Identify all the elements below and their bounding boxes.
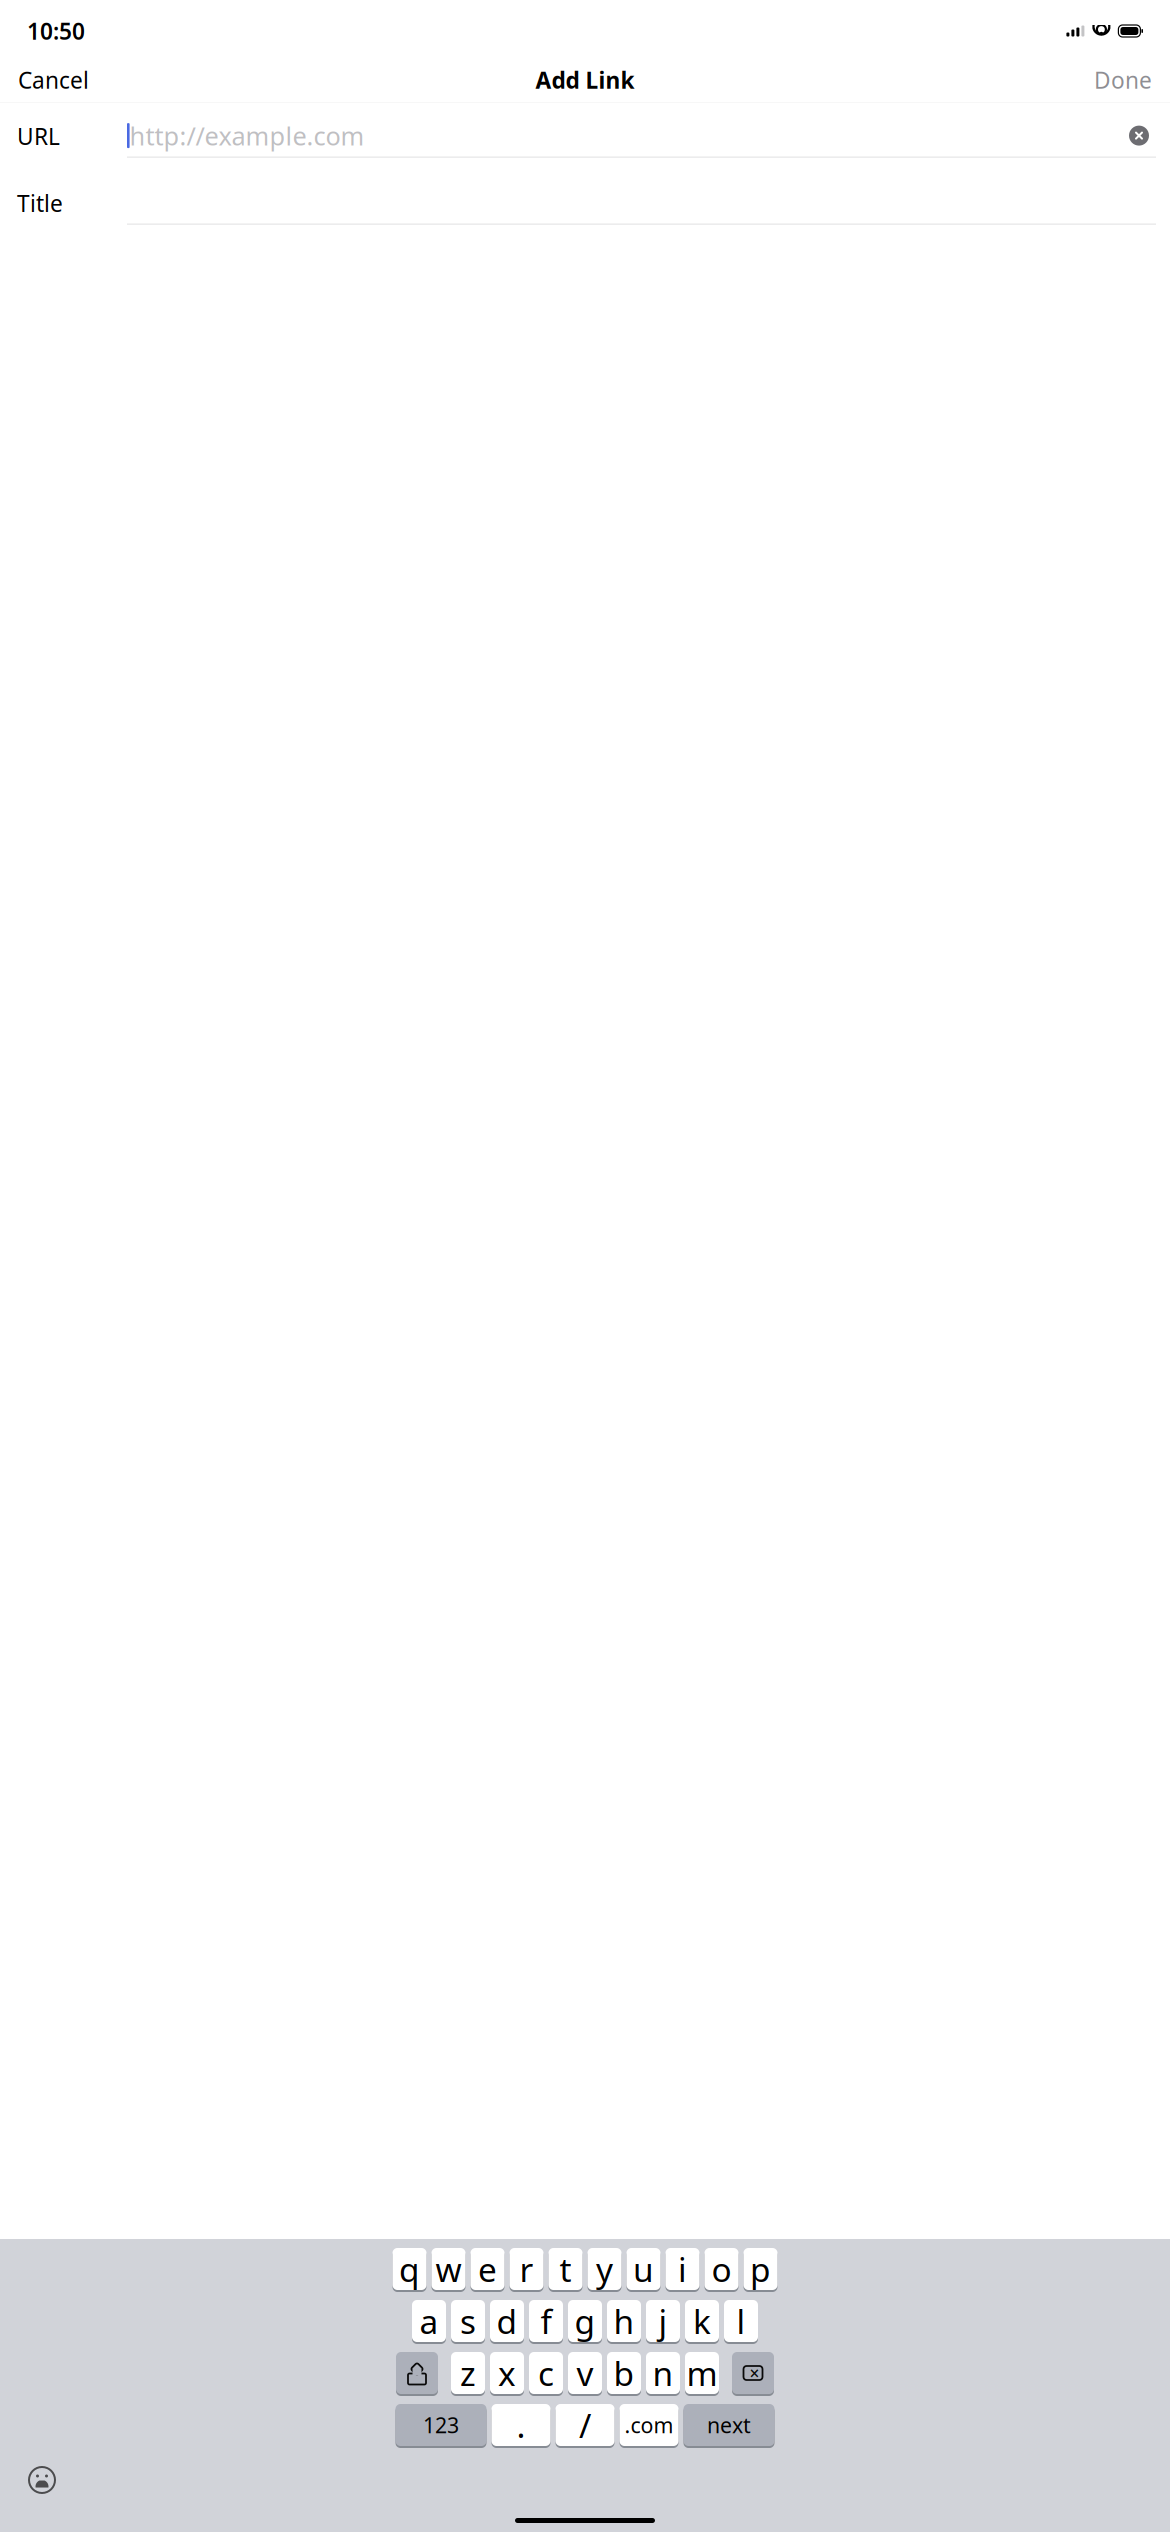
staticText: k (693, 2299, 711, 2343)
button[interactable]: h (607, 2300, 641, 2344)
staticText: s (460, 2299, 476, 2343)
button[interactable]: Done (1085, 57, 1161, 103)
staticText: y (596, 2247, 613, 2291)
staticText: b (613, 2351, 634, 2395)
button[interactable]: s (451, 2300, 485, 2344)
button[interactable]: v (568, 2352, 602, 2396)
staticText: t (559, 2247, 571, 2291)
staticText: d (496, 2299, 517, 2343)
button[interactable]: q (392, 2248, 426, 2292)
staticText: Done (1094, 65, 1152, 95)
staticText: q (399, 2247, 420, 2291)
staticText: v (576, 2351, 593, 2395)
staticText: Cancel (18, 65, 89, 95)
staticText: x (498, 2351, 516, 2395)
button[interactable]: r (509, 2248, 543, 2292)
staticText: 123 (423, 2411, 459, 2439)
button[interactable]: i (665, 2248, 699, 2292)
button[interactable]: t (548, 2248, 582, 2292)
button[interactable]: c (529, 2352, 563, 2396)
staticText: g (574, 2299, 595, 2343)
button[interactable]: j (646, 2300, 680, 2344)
button[interactable]: a (412, 2300, 446, 2344)
button[interactable]: b (607, 2352, 641, 2396)
button[interactable]: n (646, 2352, 680, 2396)
staticText: c (538, 2351, 554, 2395)
staticText: m (686, 2351, 717, 2395)
staticText: j (658, 2299, 667, 2343)
button[interactable]: f (529, 2300, 563, 2344)
staticText: i (678, 2247, 687, 2291)
button[interactable]: / (555, 2404, 614, 2448)
staticText: p (750, 2247, 771, 2291)
button[interactable]: Emoji (22, 2460, 62, 2500)
staticText: / (579, 2403, 591, 2447)
button[interactable]: u (626, 2248, 660, 2292)
staticText: .com (624, 2411, 673, 2439)
staticText: 10:50 (27, 16, 85, 46)
button[interactable]: .com (619, 2404, 678, 2448)
button[interactable]: m (685, 2352, 719, 2396)
staticText: Title (17, 188, 63, 218)
button[interactable]: l (724, 2300, 758, 2344)
staticText: r (519, 2247, 533, 2291)
button[interactable]: Clear text (1122, 119, 1156, 153)
staticText: × (749, 2361, 759, 2384)
button[interactable]: Delete (732, 2352, 774, 2396)
staticText: n (652, 2351, 673, 2395)
staticText: http://example.com (130, 119, 365, 152)
staticText: URL (17, 121, 60, 151)
staticText: e (478, 2247, 497, 2291)
staticText: f (540, 2299, 551, 2343)
staticText: . (516, 2403, 525, 2447)
staticText: l (736, 2299, 745, 2343)
button[interactable]: . (491, 2404, 550, 2448)
staticText: Add Link (535, 65, 634, 95)
button[interactable]: next (683, 2404, 774, 2448)
staticText: o (711, 2247, 731, 2291)
button[interactable]: d (490, 2300, 524, 2344)
button[interactable]: 123 (395, 2404, 486, 2448)
button[interactable]: z (451, 2352, 485, 2396)
button[interactable]: Cancel (9, 57, 98, 103)
staticText: z (460, 2351, 476, 2395)
button[interactable]: e (470, 2248, 504, 2292)
staticText: h (613, 2299, 634, 2343)
button[interactable]: Shift (396, 2352, 438, 2396)
button[interactable]: k (685, 2300, 719, 2344)
button[interactable]: y (587, 2248, 621, 2292)
button[interactable]: p (743, 2248, 777, 2292)
button[interactable]: o (704, 2248, 738, 2292)
staticText: a (419, 2299, 438, 2343)
staticText: u (633, 2247, 654, 2291)
button[interactable]: x (490, 2352, 524, 2396)
button[interactable]: g (568, 2300, 602, 2344)
staticText: next (707, 2411, 751, 2439)
button[interactable]: w (431, 2248, 465, 2292)
staticText: w (435, 2247, 461, 2291)
